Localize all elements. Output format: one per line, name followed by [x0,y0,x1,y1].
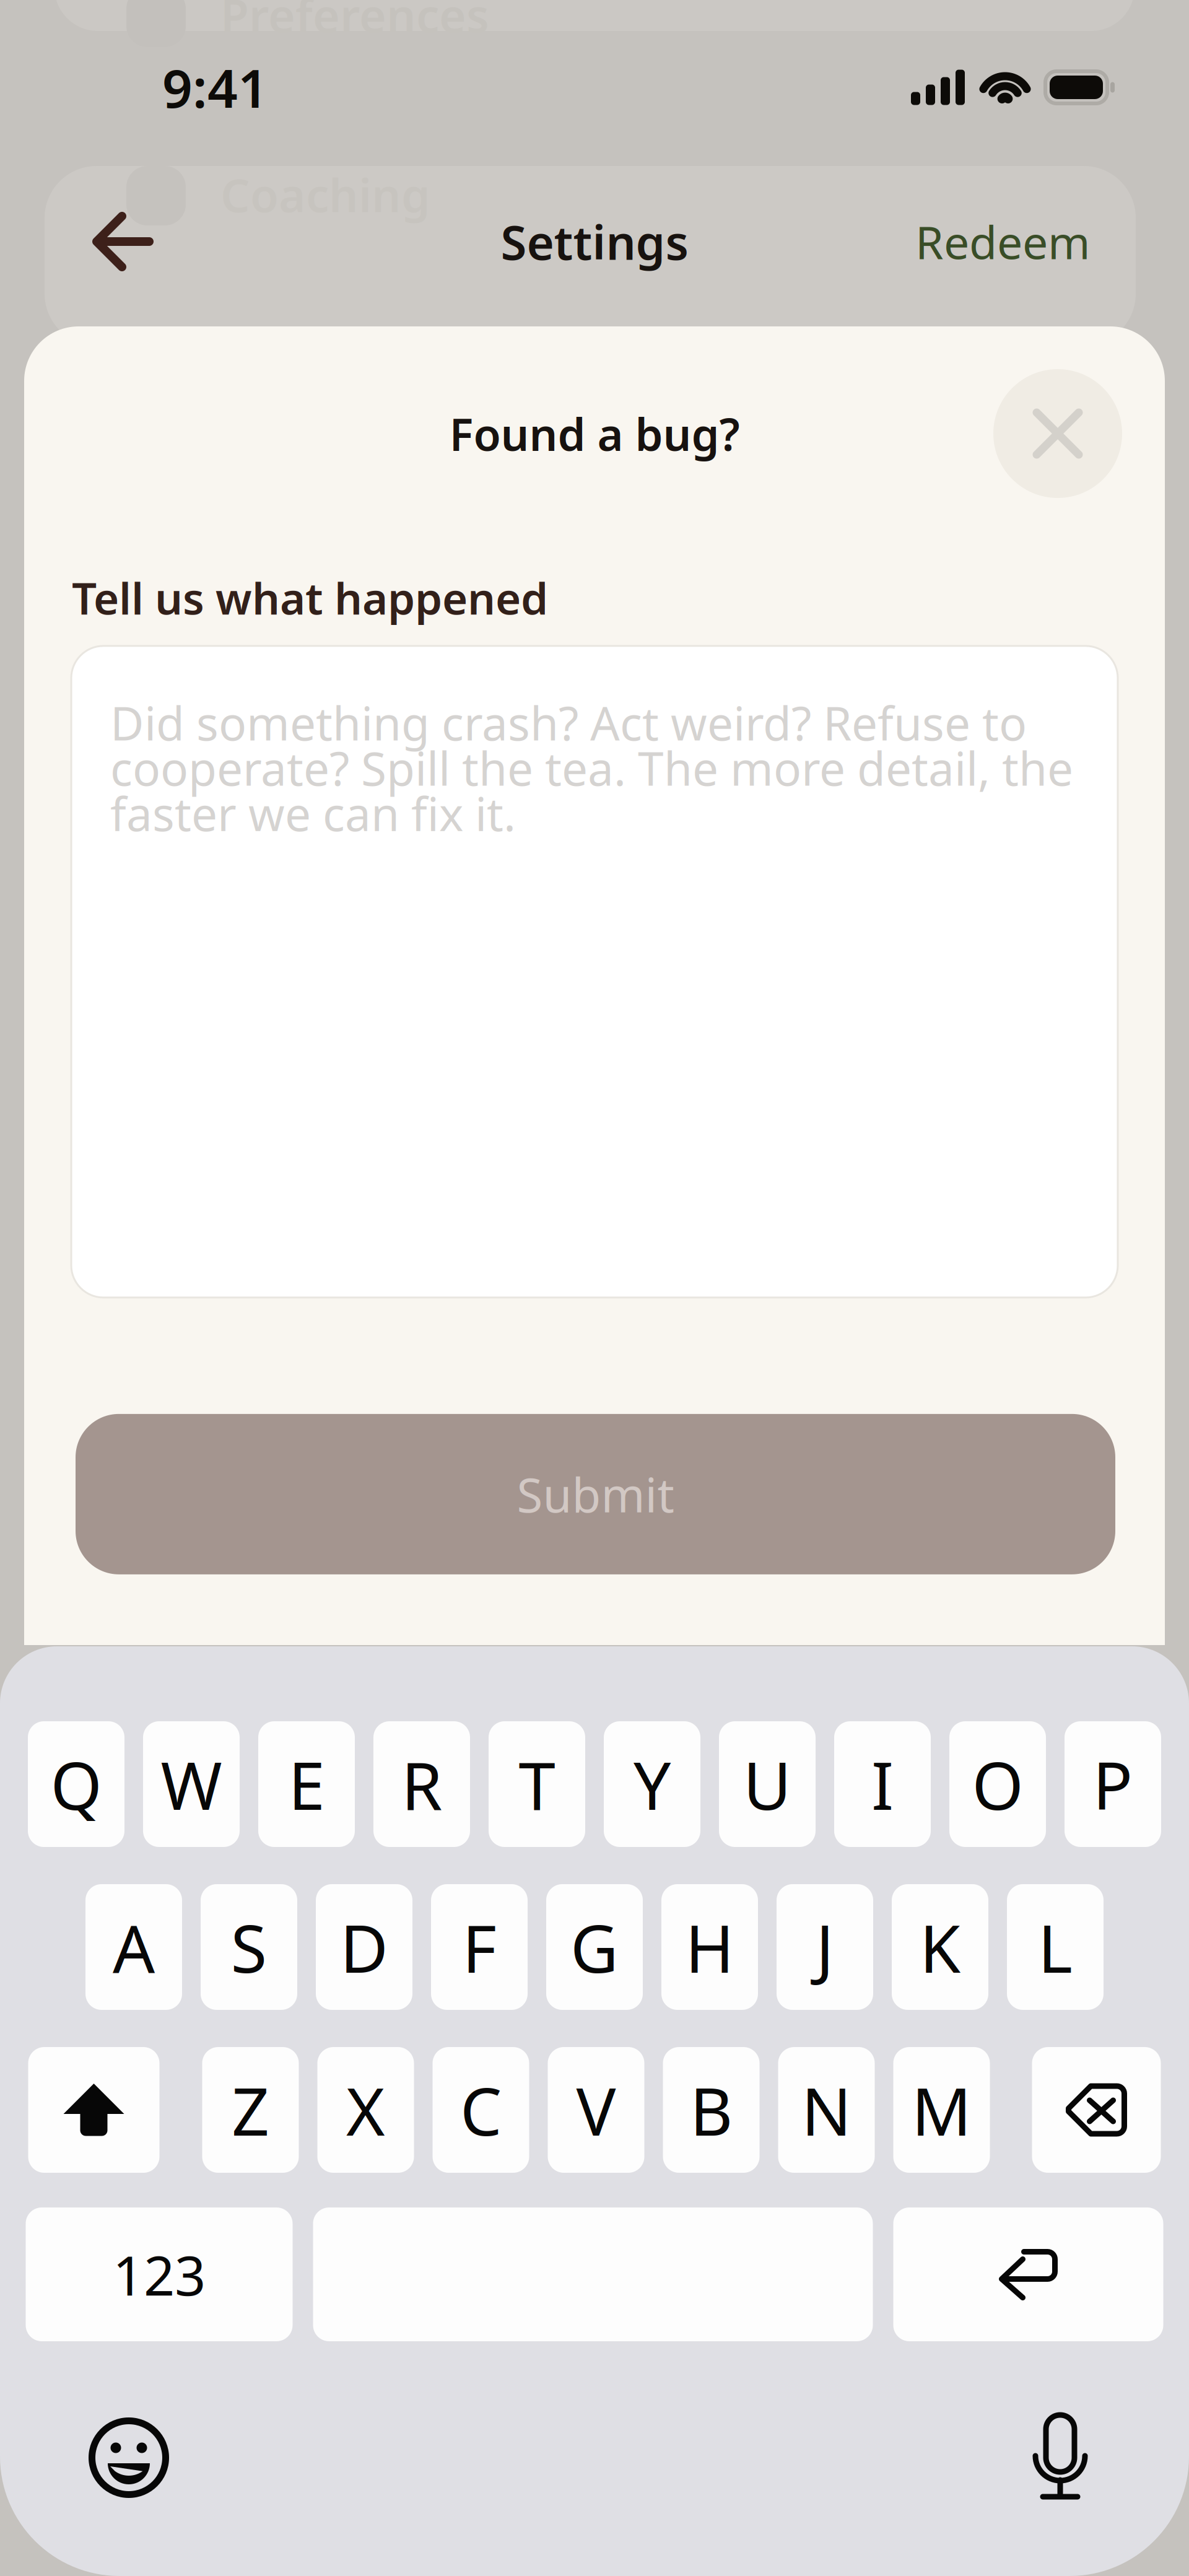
button[interactable]: Q [28,1721,124,1847]
button[interactable]: B [663,2047,760,2173]
staticText: Tell us what happened [72,569,548,627]
button[interactable]: I [834,1721,931,1847]
button[interactable]: H [661,1884,758,2010]
button[interactable]: Return [893,2207,1163,2341]
staticText: 9:41 [162,52,268,122]
staticText: A [113,1903,155,1991]
button[interactable]: R [373,1721,470,1847]
staticText: G [570,1903,619,1991]
button[interactable]: X [317,2047,414,2173]
button[interactable]: Submit [76,1414,1115,1574]
button[interactable]: S [201,1884,297,2010]
button[interactable]: J [777,1884,873,2010]
staticText: 123 [113,2238,206,2311]
button[interactable]: N [778,2047,875,2173]
button[interactable]: W [143,1721,240,1847]
staticText: I [871,1740,894,1828]
button[interactable]: Redeem [915,204,1091,279]
button[interactable]: E [258,1721,355,1847]
button[interactable]: Emoji [82,2411,175,2504]
button[interactable]: G [546,1884,643,2010]
staticText: Settings [501,210,688,273]
staticText: H [685,1903,734,1991]
staticText: V [576,2066,616,2154]
staticText: Q [50,1740,102,1828]
staticText: L [1038,1903,1073,1991]
staticText: B [690,2066,733,2154]
button[interactable]: A [85,1884,182,2010]
staticText: Did something crash? Act weird? Refuse t… [110,692,1073,844]
button[interactable]: Delete [1032,2047,1161,2173]
button[interactable]: Y [604,1721,700,1847]
staticText: O [972,1740,1023,1828]
staticText: U [743,1740,791,1828]
staticText: J [816,1903,834,1991]
staticText: S [231,1903,267,1991]
staticText: Found a bug? [449,404,740,463]
staticText: K [920,1903,960,1991]
staticText: Z [232,2066,269,2154]
staticText: F [462,1903,496,1991]
button[interactable]: L [1007,1884,1104,2010]
button[interactable]: Dictation [1014,2411,1107,2504]
staticText: Submit [517,1463,674,1525]
staticText: D [340,1903,388,1991]
button[interactable]: V [548,2047,644,2173]
staticText: M [912,2066,972,2154]
staticText: Y [634,1740,671,1828]
button[interactable]: C [433,2047,529,2173]
staticText: X [346,2066,385,2154]
staticText: Redeem [915,211,1091,272]
staticText: W [161,1740,222,1828]
staticText: C [460,2066,502,2154]
button[interactable]: Shift [28,2047,159,2173]
staticText: E [288,1740,325,1828]
staticText: N [801,2066,851,2154]
button[interactable]: Z [202,2047,299,2173]
button[interactable]: F [431,1884,528,2010]
button[interactable]: K [892,1884,988,2010]
staticText: R [401,1740,442,1828]
button[interactable]: T [489,1721,585,1847]
button[interactable]: O [949,1721,1046,1847]
button[interactable]: U [719,1721,816,1847]
button[interactable]: Close [993,369,1122,498]
button[interactable]: 123 [26,2207,293,2341]
button[interactable]: D [316,1884,412,2010]
staticText: T [519,1740,555,1828]
button[interactable]: P [1065,1721,1161,1847]
button[interactable]: Back [84,204,158,279]
staticText: P [1093,1740,1133,1828]
staticText: Preferences [220,0,489,45]
button[interactable]: M [893,2047,990,2173]
